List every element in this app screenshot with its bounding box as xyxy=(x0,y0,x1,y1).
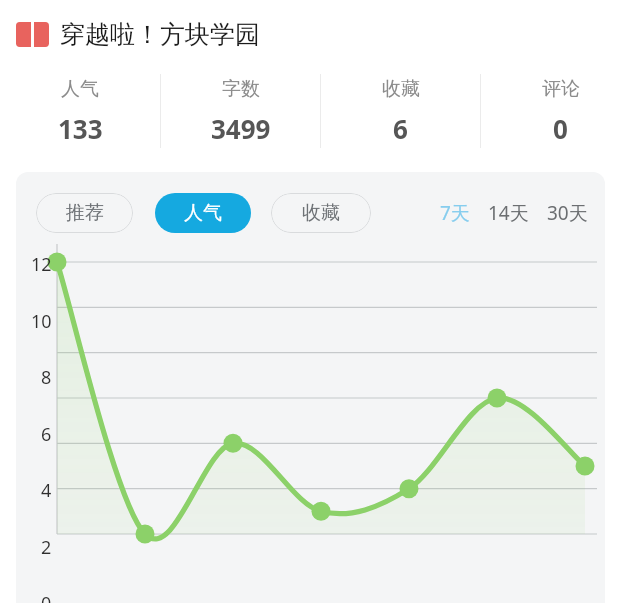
staticText: 12 xyxy=(31,252,52,277)
staticText: 0 xyxy=(41,591,52,603)
button[interactable]: 14天 xyxy=(485,192,532,234)
button[interactable]: 收藏 xyxy=(271,193,371,233)
button[interactable]: 字数 xyxy=(161,68,320,154)
staticText: 0 xyxy=(553,111,568,146)
staticText: 字数 xyxy=(222,77,260,101)
staticText: 6 xyxy=(41,422,52,447)
staticText: 7天 xyxy=(440,200,470,226)
staticText: 收藏 xyxy=(382,77,420,101)
staticText: 收藏 xyxy=(302,201,340,225)
button[interactable]: 人气 xyxy=(155,193,251,233)
staticText: 4 xyxy=(41,478,52,503)
button[interactable]: 7天 xyxy=(437,192,473,234)
staticText: 10 xyxy=(31,309,52,334)
staticText: 30天 xyxy=(547,200,588,226)
staticText: 人气 xyxy=(61,77,99,101)
staticText: 穿越啦！方块学园 xyxy=(60,19,260,50)
button[interactable]: 评论 xyxy=(481,68,640,154)
staticText: 133 xyxy=(58,111,103,146)
staticText: 评论 xyxy=(542,77,580,101)
staticText: 6 xyxy=(393,111,408,146)
staticText: 2 xyxy=(41,535,52,560)
button[interactable]: 收藏 xyxy=(321,68,480,154)
staticText: 14天 xyxy=(488,200,529,226)
staticText: 8 xyxy=(41,365,52,390)
staticText: 人气 xyxy=(184,201,222,225)
button[interactable]: 30天 xyxy=(544,192,591,234)
button[interactable]: 人气 xyxy=(0,68,160,154)
button[interactable]: 推荐 xyxy=(36,193,133,233)
staticText: 推荐 xyxy=(66,201,104,225)
button[interactable]: Book xyxy=(0,0,640,68)
other: Book xyxy=(16,22,49,47)
staticText: 3499 xyxy=(211,111,271,146)
